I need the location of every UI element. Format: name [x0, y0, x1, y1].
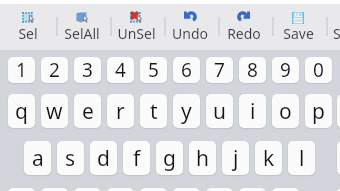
button[interactable]: g: [156, 141, 183, 175]
staticText: t: [150, 97, 158, 126]
button[interactable]: key: [74, 188, 101, 191]
staticText: o: [279, 97, 292, 126]
staticText: SelAll: [64, 24, 100, 43]
button[interactable]: l: [288, 141, 315, 175]
button[interactable]: k: [255, 141, 282, 175]
button[interactable]: 5: [140, 57, 167, 83]
staticText: j: [233, 144, 239, 173]
staticText: w: [46, 97, 63, 126]
button[interactable]: d: [90, 141, 117, 175]
button[interactable]: key: [107, 188, 134, 191]
button[interactable]: 1: [8, 57, 35, 83]
button[interactable]: h: [189, 141, 216, 175]
button[interactable]: 7: [206, 57, 233, 83]
staticText: l: [299, 144, 305, 173]
button[interactable]: key: [337, 141, 340, 175]
staticText: 8: [247, 57, 258, 83]
staticText: UnSel: [117, 24, 156, 43]
staticText: i: [250, 97, 256, 126]
staticText: 1: [16, 57, 27, 83]
button[interactable]: 3: [74, 57, 101, 83]
button[interactable]: 0: [305, 57, 332, 83]
staticText: Undo: [172, 24, 208, 43]
button[interactable]: a: [24, 141, 51, 175]
staticText: 3: [82, 57, 93, 83]
staticText: d: [97, 144, 110, 173]
staticText: 6: [181, 57, 192, 83]
button[interactable]: Sel: [1, 4, 55, 50]
button[interactable]: j: [222, 141, 249, 175]
button[interactable]: UnSel: [109, 4, 163, 50]
button[interactable]: Redo: [217, 4, 271, 50]
staticText: 0: [313, 57, 324, 83]
staticText: k: [263, 144, 275, 173]
staticText: u: [213, 97, 226, 126]
button[interactable]: Select: [325, 4, 340, 50]
button[interactable]: u: [206, 94, 233, 128]
button[interactable]: f: [123, 141, 150, 175]
staticText: 2: [49, 57, 60, 83]
button[interactable]: Undo: [163, 4, 217, 50]
button[interactable]: key: [140, 188, 167, 191]
button[interactable]: Save: [271, 4, 325, 50]
staticText: s: [65, 144, 76, 173]
button[interactable]: key: [206, 188, 233, 191]
staticText: 5: [148, 57, 159, 83]
staticText: a: [32, 144, 44, 173]
button[interactable]: 4: [107, 57, 134, 83]
staticText: p: [312, 97, 325, 126]
button[interactable]: 6: [173, 57, 200, 83]
staticText: q: [15, 97, 28, 126]
staticText: 4: [115, 57, 126, 83]
button[interactable]: key: [337, 94, 340, 128]
button[interactable]: 9: [272, 57, 299, 83]
staticText: Select: [333, 24, 340, 43]
button[interactable]: key: [173, 188, 200, 191]
button[interactable]: key: [337, 188, 340, 191]
staticText: y: [181, 97, 192, 126]
button[interactable]: i: [239, 94, 266, 128]
staticText: Save: [283, 24, 314, 43]
button[interactable]: key: [272, 188, 299, 191]
staticText: 7: [214, 57, 225, 83]
staticText: h: [196, 144, 209, 173]
button[interactable]: key: [41, 188, 68, 191]
staticText: 9: [280, 57, 291, 83]
button[interactable]: 2: [41, 57, 68, 83]
button[interactable]: y: [173, 94, 200, 128]
button[interactable]: SelAll: [55, 4, 109, 50]
staticText: f: [133, 144, 141, 173]
button[interactable]: key: [239, 188, 266, 191]
button[interactable]: t: [140, 94, 167, 128]
button[interactable]: key: [8, 188, 35, 191]
staticText: Sel: [18, 24, 38, 43]
staticText: r: [116, 97, 125, 126]
button[interactable]: r: [107, 94, 134, 128]
button[interactable]: p: [305, 94, 332, 128]
button[interactable]: s: [57, 141, 84, 175]
staticText: g: [163, 144, 176, 173]
button[interactable]: 8: [239, 57, 266, 83]
button[interactable]: q: [8, 94, 35, 128]
staticText: e: [82, 97, 94, 126]
staticText: Redo: [227, 24, 261, 43]
button[interactable]: w: [41, 94, 68, 128]
button[interactable]: o: [272, 94, 299, 128]
button[interactable]: e: [74, 94, 101, 128]
